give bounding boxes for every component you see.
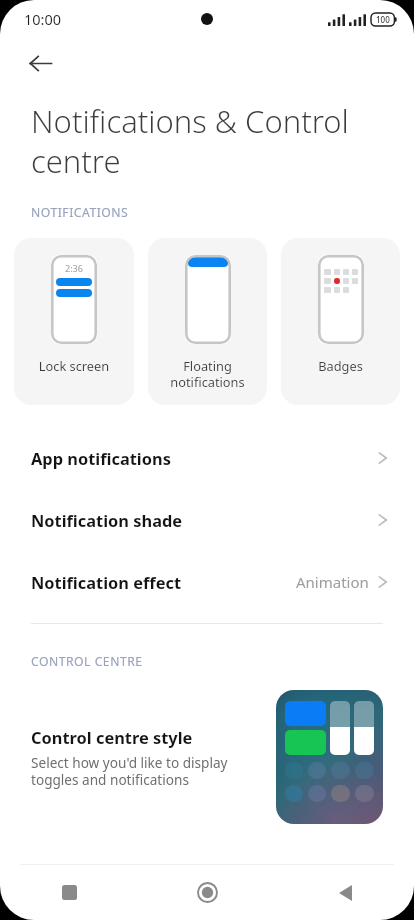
button[interactable]: App notifications xyxy=(0,427,414,489)
staticText: Lock screen xyxy=(14,357,134,374)
button[interactable]: Notification shade xyxy=(0,489,414,551)
staticText: Notifications & Control centre xyxy=(31,100,368,182)
staticText: Floating notifications xyxy=(148,357,267,390)
staticText: Control centre style xyxy=(31,726,193,748)
staticText: 2:36 xyxy=(65,262,83,274)
staticText: Notification effect xyxy=(31,571,182,593)
button[interactable]: Floating notifications xyxy=(148,238,267,405)
staticText: Select how you'd like to display toggles… xyxy=(31,753,264,789)
button[interactable]: Home xyxy=(138,865,276,920)
button[interactable]: Badges xyxy=(281,238,400,405)
button[interactable]: Back xyxy=(18,41,62,85)
staticText: App notifications xyxy=(31,447,171,469)
button[interactable]: Recents xyxy=(0,865,138,920)
staticText: NOTIFICATIONS xyxy=(31,204,129,221)
button[interactable]: Back xyxy=(276,865,414,920)
staticText: Notification shade xyxy=(31,509,183,531)
button[interactable]: Control centre style xyxy=(0,682,414,832)
button[interactable]: 2:36 xyxy=(14,238,134,405)
button[interactable]: Notification effect xyxy=(0,551,414,613)
staticText: CONTROL CENTRE xyxy=(31,653,143,670)
staticText: Animation xyxy=(296,572,369,592)
staticText: 100 xyxy=(376,14,390,25)
staticText: Badges xyxy=(281,357,400,374)
staticText: 10:00 xyxy=(24,9,62,29)
